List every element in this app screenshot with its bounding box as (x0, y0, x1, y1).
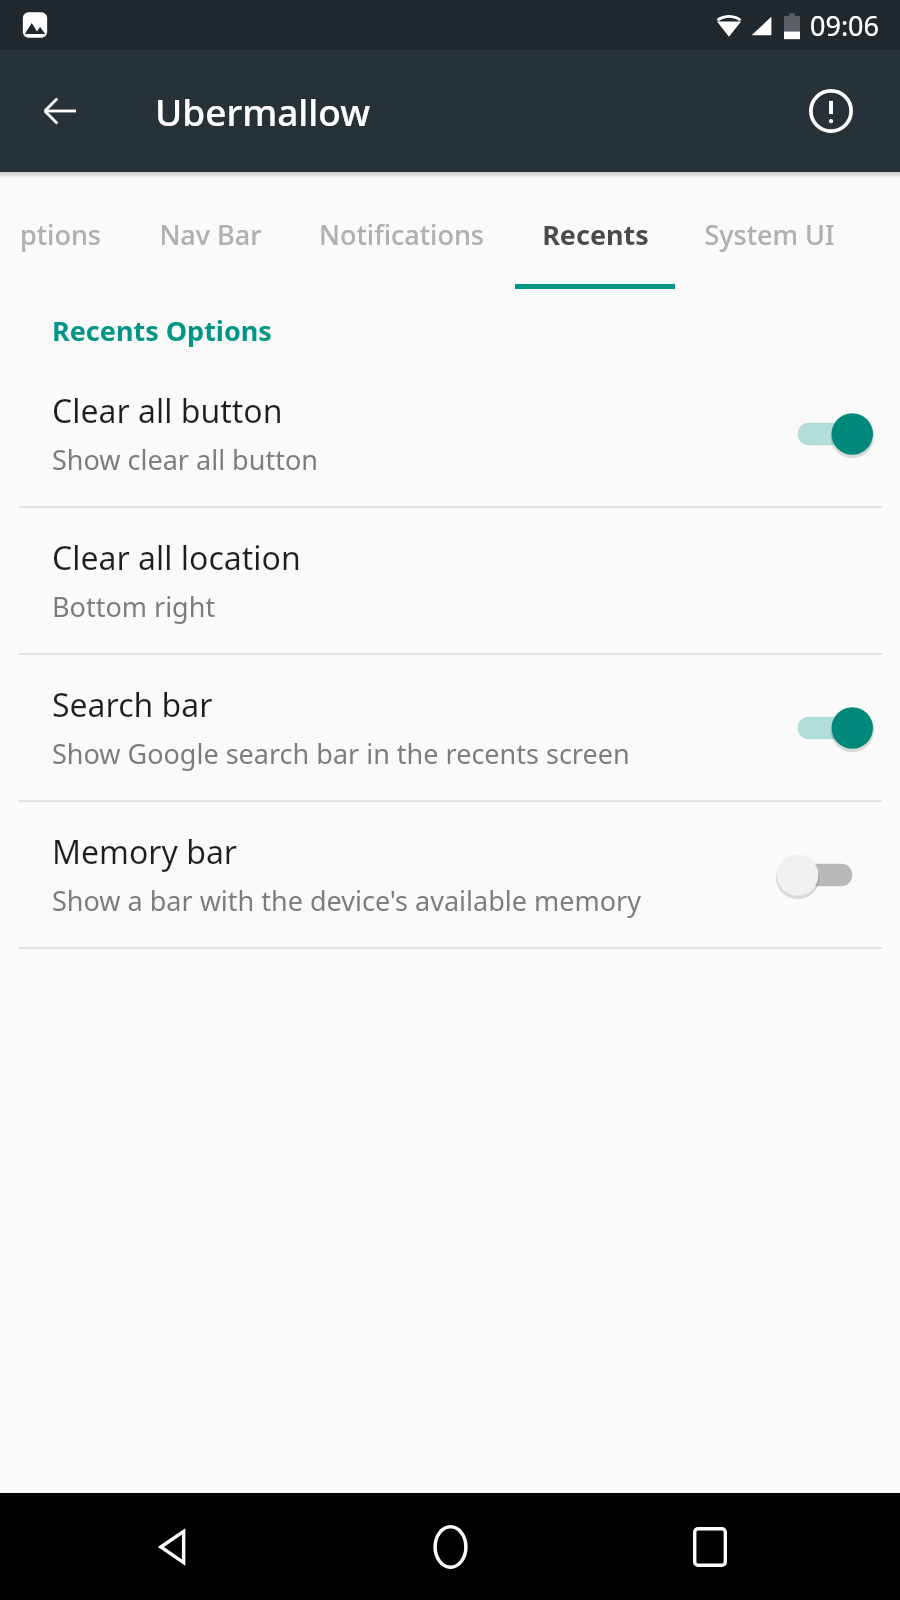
button[interactable]: ptions (0, 178, 175, 290)
button[interactable]: Back (26, 77, 94, 145)
staticText: Show a bar with the device's available m… (52, 882, 641, 919)
button[interactable]: Toggle on (786, 406, 864, 462)
staticText: Bottom right (52, 588, 216, 625)
staticText: Show Google search bar in the recents sc… (52, 735, 630, 772)
button[interactable]: System UI (654, 178, 884, 290)
staticText: Nav Bar (159, 216, 262, 253)
staticText: Recents Options (52, 312, 272, 349)
button[interactable]: Toggle on (786, 700, 864, 756)
button[interactable]: Notifications (286, 178, 516, 290)
staticText: Memory bar (52, 830, 238, 874)
staticText: 09:06 (810, 7, 880, 44)
staticText: Notifications (319, 216, 484, 253)
button[interactable]: Clear all button (0, 361, 900, 506)
staticText: Recents (542, 216, 649, 253)
staticText: Show clear all button (52, 441, 318, 478)
button[interactable]: Nav Bar (95, 178, 325, 290)
button[interactable]: Memory bar (0, 802, 900, 947)
button[interactable]: Information (800, 80, 862, 142)
button[interactable]: Search bar (0, 655, 900, 800)
button[interactable]: Home (407, 1504, 493, 1590)
button[interactable]: Recent apps (667, 1504, 753, 1590)
button[interactable]: Recents (480, 178, 710, 290)
button[interactable]: Back (130, 1504, 216, 1590)
button[interactable]: Clear all location (0, 508, 900, 653)
button[interactable]: Toggle off (786, 847, 864, 903)
staticText: Clear all location (52, 536, 301, 580)
staticText: Search bar (52, 683, 213, 727)
staticText: ptions (20, 216, 101, 253)
staticText: Ubermallow (155, 86, 371, 136)
staticText: System UI (704, 216, 835, 253)
staticText: Clear all button (52, 389, 283, 433)
